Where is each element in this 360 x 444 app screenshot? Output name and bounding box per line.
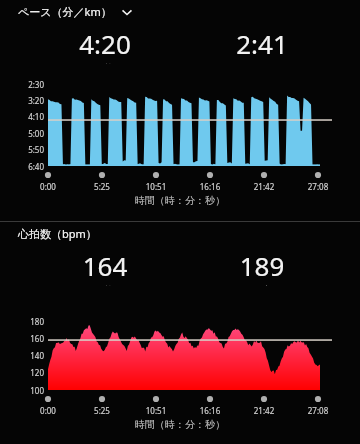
staticText: 21:42 xyxy=(244,181,284,192)
staticText: 10:51 xyxy=(136,181,176,192)
staticText: ペース（分／km） xyxy=(18,4,112,19)
staticText: 3:20 xyxy=(16,95,44,106)
staticText: 時間（時：分：秒） xyxy=(0,418,360,431)
staticText: 27:08 xyxy=(298,181,338,192)
staticText: 時間（時：分：秒） xyxy=(0,194,360,207)
staticText: 0:00 xyxy=(28,405,68,416)
staticText: 6:40 xyxy=(16,161,44,172)
staticText: 0:00 xyxy=(28,181,68,192)
staticText: 4:10 xyxy=(16,111,44,122)
staticText: 160 xyxy=(16,333,44,344)
staticText: 5:50 xyxy=(16,144,44,155)
staticText: 最大 xyxy=(202,284,322,286)
button[interactable]: ペース（分／km） xyxy=(18,4,134,19)
staticText: 16:16 xyxy=(190,181,230,192)
staticText: 21:42 xyxy=(244,405,284,416)
staticText: 2:30 xyxy=(16,79,44,90)
staticText: 2:41 xyxy=(202,26,322,61)
staticText: 27:08 xyxy=(298,405,338,416)
staticText: 164 xyxy=(45,248,165,283)
staticText: 180 xyxy=(16,316,44,327)
staticText: 平均 xyxy=(45,284,165,286)
staticText: 10:51 xyxy=(136,405,176,416)
staticText: 心拍数（bpm） xyxy=(18,226,97,241)
button[interactable]: 心拍数（bpm） xyxy=(18,226,97,241)
staticText: 5:25 xyxy=(82,181,122,192)
staticText: 120 xyxy=(16,367,44,378)
staticText: 16:16 xyxy=(190,405,230,416)
staticText: 189 xyxy=(202,248,322,283)
staticText: 平均 xyxy=(45,62,165,64)
staticText: 100 xyxy=(16,385,44,396)
staticText: 4:20 xyxy=(45,26,165,61)
staticText: 5:00 xyxy=(16,128,44,139)
other: Change metric xyxy=(120,5,134,19)
staticText: 5:25 xyxy=(82,405,122,416)
staticText: 140 xyxy=(16,350,44,361)
